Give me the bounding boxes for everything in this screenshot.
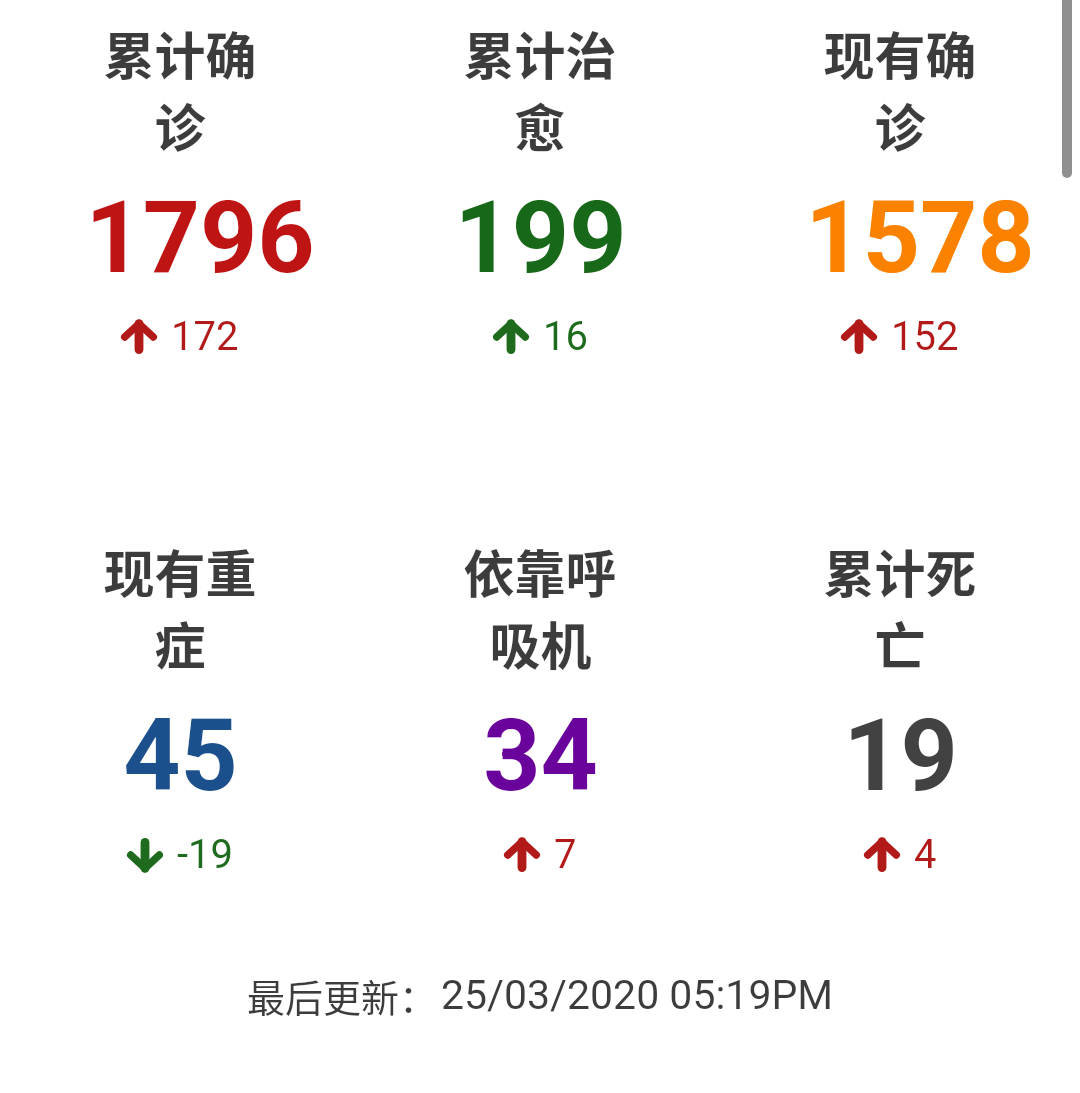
other: Increase [864, 838, 900, 872]
button[interactable]: 现有确诊 1578 [730, 8, 1070, 378]
staticText: 愈 [514, 88, 566, 162]
staticText: 最后更新： [247, 968, 438, 1023]
staticText: 诊 [154, 88, 206, 162]
staticText: 7 [554, 831, 577, 878]
staticText: 16 [543, 313, 588, 360]
staticText: 累计确 [103, 16, 257, 90]
staticText: 172 [171, 313, 239, 360]
staticText: 诊 [874, 88, 926, 162]
other: Increase [841, 320, 877, 354]
staticText: 19 [843, 697, 958, 814]
other: Increase [493, 320, 529, 354]
staticText: 34 [483, 697, 598, 814]
staticText: 吸机 [489, 606, 592, 680]
button[interactable]: 累计确诊 1796 [10, 8, 350, 378]
staticText: 45 [123, 697, 238, 814]
staticText: 152 [891, 313, 959, 360]
staticText: 现有重 [103, 534, 257, 608]
staticText: 1578 [805, 179, 1035, 296]
staticText: 累计死 [823, 534, 977, 608]
staticText: 199 [454, 179, 627, 296]
button[interactable]: 现有重症 45 [10, 526, 350, 896]
other: Increase [504, 838, 540, 872]
staticText: 症 [154, 606, 206, 680]
staticText: -19 [177, 831, 234, 878]
staticText: 亡 [874, 606, 926, 680]
button[interactable]: 依靠呼吸机 34 [370, 526, 710, 896]
other: Increase [121, 320, 157, 354]
button[interactable]: 最后更新： [0, 968, 1080, 1028]
button[interactable]: 累计治愈 199 [370, 8, 710, 378]
button[interactable]: 累计死亡 19 [730, 526, 1070, 896]
staticText: 4 [914, 831, 937, 878]
other: Decrease [127, 838, 163, 872]
staticText: 累计治 [463, 16, 617, 90]
staticText: 现有确 [823, 16, 977, 90]
staticText: 1796 [85, 179, 315, 296]
staticText: 25/03/2020 05:19PM [441, 971, 834, 1019]
staticText: 依靠呼 [463, 534, 617, 608]
other: Scroll position [1062, 0, 1072, 178]
